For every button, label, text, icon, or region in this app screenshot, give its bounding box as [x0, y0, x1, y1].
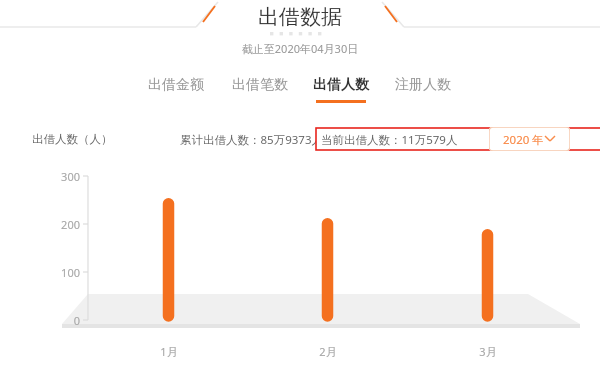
staticText: 出借笔数: [232, 76, 288, 94]
button[interactable]: 出借人数: [301, 76, 381, 106]
staticText: 累计出借人数：85万9373人: [180, 132, 323, 148]
staticText: 截止至2020年04月30日: [200, 41, 400, 369]
staticText: 注册人数: [395, 76, 451, 94]
staticText: 0: [38, 313, 80, 369]
staticText: 出借金额: [148, 76, 204, 94]
staticText: 100: [38, 265, 80, 369]
staticText: 出借人数（人）: [32, 132, 113, 146]
staticText: 3月: [463, 344, 513, 369]
button[interactable]: 2020 年: [489, 127, 570, 151]
staticText: 1月: [144, 344, 194, 369]
staticText: 当前出借人数：11万579人: [321, 132, 458, 148]
staticText: 出借人数: [313, 76, 369, 94]
button[interactable]: 出借笔数: [220, 76, 300, 106]
staticText: 300: [38, 169, 80, 369]
staticText: 200: [38, 217, 80, 369]
staticText: 2020 年: [503, 132, 544, 148]
staticText: 出借数据: [200, 4, 400, 369]
staticText: 2月: [303, 344, 353, 369]
button[interactable]: 注册人数: [383, 76, 463, 106]
button[interactable]: 出借金额: [136, 76, 216, 106]
button[interactable]: 当前出借人数：11万579人: [316, 128, 600, 150]
